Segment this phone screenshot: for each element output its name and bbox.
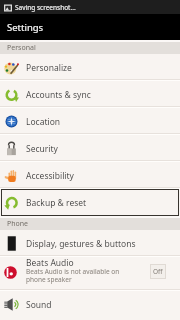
staticText: Location bbox=[26, 116, 61, 128]
button[interactable]: Sound bbox=[0, 291, 180, 318]
button[interactable]: Location bbox=[0, 108, 180, 135]
button[interactable]: Beats Audio bbox=[0, 257, 180, 291]
staticText: Beats Audio is not available on phone sp… bbox=[26, 267, 120, 284]
staticText: Off bbox=[153, 267, 163, 276]
button[interactable]: Off bbox=[150, 264, 166, 279]
staticText: Beats Audio bbox=[26, 257, 74, 269]
staticText: Security bbox=[26, 143, 58, 155]
staticText: Sound bbox=[26, 299, 52, 311]
staticText: Accounts & sync bbox=[26, 89, 91, 101]
staticText: Personalize bbox=[26, 62, 72, 74]
staticText: Personal bbox=[7, 43, 36, 53]
staticText: Phone bbox=[7, 219, 29, 229]
button[interactable]: Display, gestures & buttons bbox=[0, 230, 180, 257]
staticText: Accessibility bbox=[26, 170, 74, 182]
button[interactable]: Personalize bbox=[0, 54, 180, 81]
staticText: Backup & reset bbox=[26, 197, 87, 209]
staticText: Saving screenshot... bbox=[15, 3, 76, 12]
button[interactable]: Accessibility bbox=[0, 162, 180, 189]
staticText: Settings bbox=[7, 21, 44, 34]
button[interactable]: Accounts & sync bbox=[0, 81, 180, 108]
button[interactable]: Security bbox=[0, 135, 180, 162]
staticText: Display, gestures & buttons bbox=[26, 238, 136, 250]
button[interactable]: Backup & reset bbox=[0, 189, 180, 216]
